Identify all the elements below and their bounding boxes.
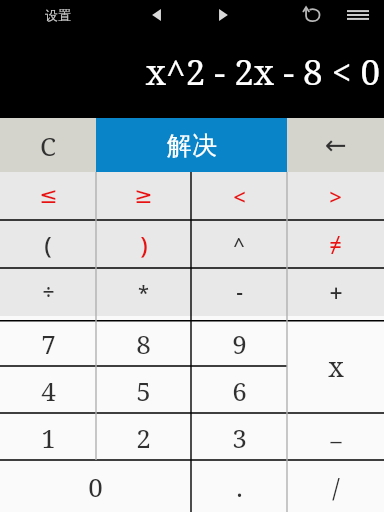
button[interactable]: *	[96, 268, 191, 316]
staticText: C	[40, 128, 56, 163]
staticText: 设置	[45, 7, 71, 23]
staticText: x^2 - 2x - 8 < 0	[145, 48, 380, 96]
staticText: 4	[41, 373, 56, 408]
staticText: -	[236, 278, 243, 307]
button[interactable]: _	[287, 413, 384, 460]
staticText: ≠	[329, 229, 342, 259]
button[interactable]: 2	[96, 414, 191, 461]
staticText: )	[140, 228, 148, 261]
button[interactable]: C	[0, 118, 96, 172]
staticText: ←	[325, 130, 347, 160]
staticText: 2	[136, 420, 151, 455]
button[interactable]: 4	[0, 367, 96, 414]
button[interactable]: <	[191, 172, 287, 220]
staticText: 3	[232, 420, 247, 455]
button[interactable]: .	[191, 461, 287, 512]
staticText: 1	[41, 420, 56, 455]
button[interactable]: 8	[96, 320, 191, 367]
button[interactable]: Backspace	[287, 118, 384, 172]
button[interactable]: 3	[191, 414, 287, 461]
button[interactable]: ≠	[287, 220, 384, 268]
staticText: 0	[88, 469, 103, 504]
staticText: 5	[136, 373, 151, 408]
button[interactable]: ≤	[0, 172, 96, 220]
staticText: >	[329, 181, 342, 211]
button[interactable]: 0	[0, 461, 191, 512]
button[interactable]: Next	[206, 2, 240, 28]
button[interactable]: 1	[0, 414, 96, 461]
button[interactable]: 6	[191, 367, 287, 414]
staticText: ≥	[134, 183, 153, 209]
staticText: *	[138, 279, 149, 306]
staticText: _	[330, 414, 342, 447]
button[interactable]: Previous	[140, 2, 174, 28]
button[interactable]: x	[287, 320, 384, 413]
button[interactable]: 5	[96, 367, 191, 414]
button[interactable]: 9	[191, 320, 287, 367]
button[interactable]: ^	[191, 220, 287, 268]
staticText: 解决	[167, 130, 217, 161]
staticText: <	[233, 181, 246, 211]
button[interactable]: 设置	[28, 2, 88, 28]
staticText: 7	[41, 326, 56, 361]
staticText: .	[236, 469, 243, 504]
button[interactable]: )	[96, 220, 191, 268]
button[interactable]: >	[287, 172, 384, 220]
button[interactable]: Menu	[340, 1, 376, 29]
button[interactable]: Undo	[296, 1, 328, 29]
staticText: 8	[136, 326, 151, 361]
button[interactable]: -	[191, 268, 287, 316]
staticText: ÷	[42, 278, 55, 307]
button[interactable]: 解决	[96, 118, 287, 172]
staticText: ^	[233, 231, 245, 258]
button[interactable]: /	[287, 460, 384, 512]
button[interactable]: ≥	[96, 172, 191, 220]
staticText: /	[332, 469, 340, 504]
staticText: +	[329, 277, 343, 308]
button[interactable]: (	[0, 220, 96, 268]
button[interactable]: 7	[0, 320, 96, 367]
staticText: x	[328, 348, 344, 385]
staticText: 9	[232, 326, 247, 361]
button[interactable]: ÷	[0, 268, 96, 316]
staticText: 6	[232, 373, 247, 408]
staticText: ≤	[39, 183, 58, 209]
staticText: (	[44, 228, 52, 261]
button[interactable]: +	[287, 268, 384, 316]
